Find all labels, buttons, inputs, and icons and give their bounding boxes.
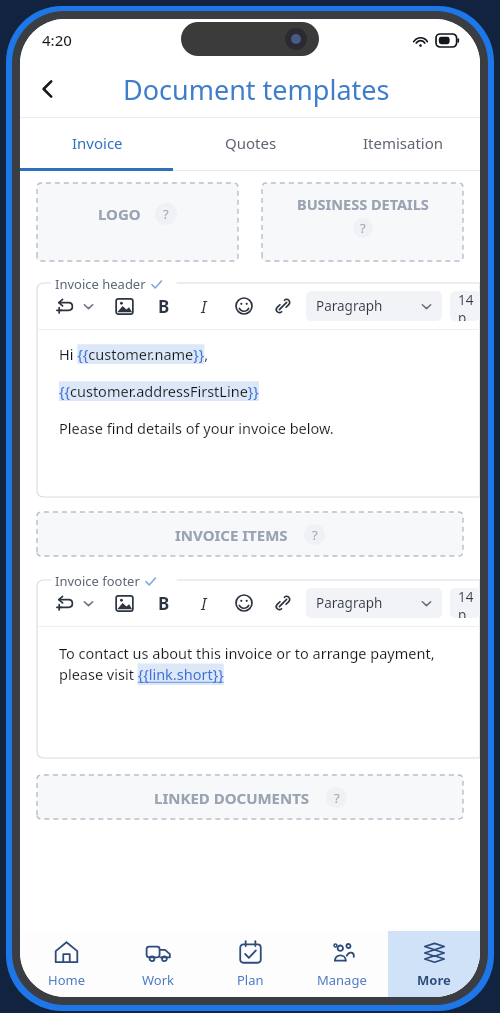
button[interactable]: Emoji <box>231 293 257 319</box>
button[interactable]: Help <box>304 524 325 545</box>
staticText: LOGO <box>98 204 141 224</box>
staticText: To contact us about this invoice or to a… <box>59 643 460 685</box>
staticText: Invoice footer <box>55 572 140 590</box>
button[interactable]: Back <box>28 69 68 109</box>
button[interactable]: Itemisation <box>327 118 480 168</box>
staticText: B <box>158 592 170 615</box>
button[interactable]: 14p <box>450 291 480 321</box>
staticText: Invoice <box>72 133 123 153</box>
staticText: I <box>201 295 207 318</box>
button[interactable]: I <box>191 590 217 616</box>
button[interactable]: Merge field <box>51 590 77 616</box>
staticText: BUSINESS DETAILS <box>297 194 429 214</box>
button[interactable]: Insert image <box>111 590 137 616</box>
button[interactable]: Manage <box>296 931 388 997</box>
staticText: Paragraph <box>316 594 383 612</box>
button[interactable]: More <box>388 931 480 997</box>
staticText: 14p <box>458 291 480 321</box>
button[interactable]: B <box>151 293 177 319</box>
staticText: B <box>158 295 170 318</box>
staticText: Home <box>48 971 85 989</box>
staticText: Quotes <box>225 133 277 153</box>
button[interactable]: Merge field <box>51 293 77 319</box>
button[interactable]: More options <box>79 297 97 315</box>
staticText: Itemisation <box>363 133 444 153</box>
staticText: Plan <box>237 971 264 989</box>
button[interactable]: Insert link <box>270 293 296 319</box>
staticText: Invoice header <box>55 275 146 293</box>
staticText: 4:20 <box>42 30 72 50</box>
button[interactable]: INVOICE ITEMS <box>37 512 463 556</box>
staticText: {{customer.addressFirstLine}} <box>59 381 259 401</box>
button[interactable]: Help <box>353 218 373 238</box>
staticText: Paragraph <box>316 297 383 315</box>
button[interactable]: Home <box>20 931 112 997</box>
button[interactable]: Plan <box>204 931 296 997</box>
button[interactable]: Quotes <box>174 118 327 168</box>
button[interactable]: Work <box>112 931 204 997</box>
staticText: ? <box>334 789 340 807</box>
button[interactable]: Invoice <box>20 118 174 168</box>
staticText: Document templates <box>123 71 390 108</box>
button[interactable]: Emoji <box>231 590 257 616</box>
button[interactable]: Help <box>155 203 177 225</box>
staticText: ? <box>163 205 169 223</box>
button[interactable]: Help <box>326 787 347 808</box>
button[interactable]: Insert image <box>111 293 137 319</box>
staticText: LINKED DOCUMENTS <box>154 788 310 808</box>
button[interactable]: B <box>151 590 177 616</box>
staticText: Work <box>142 971 175 989</box>
staticText: Hi {{customer.name}}, <box>59 344 209 364</box>
staticText: 14p <box>458 588 480 618</box>
button[interactable]: Paragraph <box>306 291 442 321</box>
staticText: Manage <box>317 971 367 989</box>
staticText: More <box>417 971 451 989</box>
button[interactable]: I <box>191 293 217 319</box>
staticText: Please find details of your invoice belo… <box>59 418 334 438</box>
staticText: ? <box>360 219 366 237</box>
button[interactable]: LINKED DOCUMENTS <box>37 775 463 819</box>
staticText: INVOICE ITEMS <box>175 525 288 545</box>
button[interactable]: LOGO <box>37 183 238 261</box>
button[interactable]: Insert link <box>270 590 296 616</box>
button[interactable]: 14p <box>450 588 480 618</box>
button[interactable]: BUSINESS DETAILS <box>262 183 463 261</box>
button[interactable]: Paragraph <box>306 588 442 618</box>
staticText: I <box>201 592 207 615</box>
button[interactable]: More options <box>79 594 97 612</box>
staticText: ? <box>312 526 318 544</box>
